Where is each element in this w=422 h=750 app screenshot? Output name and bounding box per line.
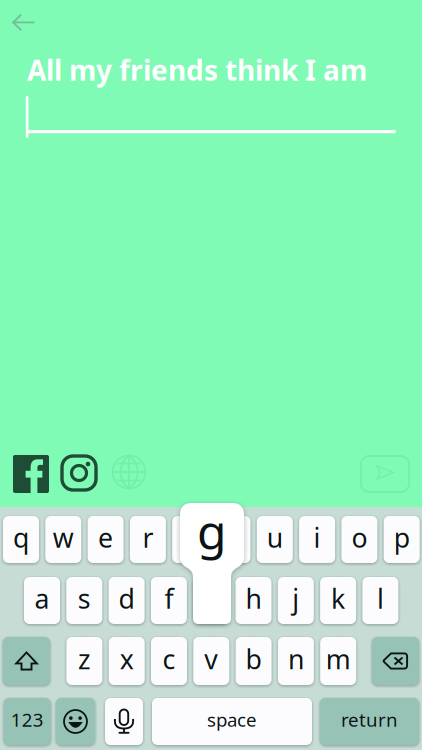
button[interactable]: n [278, 637, 314, 685]
staticText: i [314, 520, 321, 555]
staticText: z [78, 641, 91, 677]
button[interactable]: Dictation [105, 698, 143, 745]
staticText: h [245, 581, 261, 616]
button[interactable]: z [66, 637, 102, 685]
button[interactable]: Share to Instagram [61, 455, 97, 491]
button[interactable]: y [214, 516, 250, 563]
button[interactable]: s [66, 577, 102, 624]
button[interactable]: p [384, 516, 420, 563]
staticText: q [13, 520, 29, 555]
staticText: v [204, 641, 218, 677]
staticText: d [119, 581, 135, 616]
button[interactable]: c [151, 637, 187, 685]
button[interactable]: b [236, 637, 272, 685]
button[interactable]: d [109, 577, 145, 624]
button[interactable]: e [88, 516, 124, 563]
button[interactable]: u [257, 516, 293, 563]
staticText: r [142, 520, 153, 555]
button[interactable]: f [151, 577, 187, 624]
staticText: c [162, 641, 175, 677]
button[interactable]: j [278, 577, 314, 624]
button[interactable]: Back [5, 6, 51, 46]
staticText: w [53, 520, 74, 555]
staticText: s [78, 581, 91, 616]
button[interactable]: 123 [4, 698, 51, 745]
staticText: l [377, 581, 384, 616]
button[interactable]: a [24, 577, 60, 624]
button[interactable]: Emoji [56, 698, 95, 745]
staticText: a [34, 581, 49, 616]
button[interactable]: k [320, 577, 356, 624]
button[interactable]: return [320, 698, 419, 745]
staticText: space [207, 707, 257, 732]
staticText: b [246, 641, 262, 677]
button[interactable]: i [299, 516, 335, 563]
staticText: j [292, 581, 299, 616]
button[interactable]: Shift [3, 637, 50, 685]
button[interactable]: Share to web [112, 455, 146, 489]
staticText: f [164, 581, 173, 616]
staticText: k [331, 581, 345, 616]
button[interactable]: w [45, 516, 81, 563]
button[interactable]: r [130, 516, 166, 563]
staticText: return [341, 707, 398, 732]
staticText: All my friends think I am [27, 51, 367, 89]
staticText: u [267, 520, 283, 555]
button[interactable]: v [193, 637, 229, 685]
button[interactable]: q [3, 516, 39, 563]
button[interactable]: l [362, 577, 398, 624]
staticText: x [120, 641, 134, 677]
button[interactable]: Share to Facebook [13, 455, 49, 493]
staticText: n [288, 641, 304, 677]
staticText: g [197, 499, 227, 563]
button[interactable]: o [341, 516, 377, 563]
staticText: m [326, 641, 351, 677]
staticText: o [351, 520, 367, 555]
button[interactable]: g [193, 577, 229, 624]
button[interactable]: t [172, 516, 208, 563]
staticText: 123 [11, 707, 44, 732]
button[interactable]: m [320, 637, 356, 685]
button[interactable]: Delete [372, 637, 419, 685]
button[interactable]: Send [361, 456, 409, 492]
staticText: p [394, 520, 410, 555]
staticText: e [98, 520, 113, 555]
button[interactable]: x [109, 637, 145, 685]
button[interactable]: space [152, 698, 312, 745]
button[interactable]: h [235, 577, 271, 624]
